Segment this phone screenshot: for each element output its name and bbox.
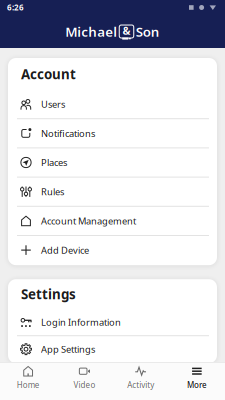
staticText: Account Management — [41, 215, 136, 227]
staticText: More — [187, 380, 207, 390]
staticText: Son — [136, 23, 160, 40]
button[interactable]: Account Management — [8, 207, 217, 236]
button[interactable]: Login Information — [8, 309, 217, 336]
staticText: Activity — [127, 380, 154, 390]
staticText: Add Device — [41, 244, 89, 256]
button[interactable]: Rules — [8, 178, 217, 207]
button[interactable]: More — [169, 365, 225, 390]
button[interactable]: Add Device — [8, 236, 217, 265]
staticText: Users — [41, 98, 65, 110]
button[interactable]: App Settings — [8, 336, 217, 363]
staticText: Video — [73, 380, 95, 390]
staticText: Account — [21, 65, 76, 83]
staticText: App Settings — [41, 343, 95, 355]
button[interactable]: Home — [0, 365, 56, 390]
staticText: Places — [41, 156, 67, 169]
button[interactable]: Activity — [112, 365, 169, 390]
button[interactable]: Video — [56, 365, 112, 390]
button[interactable]: Users — [8, 90, 217, 119]
button[interactable]: Notifications — [8, 119, 217, 148]
staticText: Rules — [41, 185, 64, 198]
button[interactable]: Places — [8, 148, 217, 178]
staticText: 6:26 — [7, 2, 24, 13]
staticText: Login Information — [41, 316, 121, 328]
staticText: Michael — [65, 23, 117, 40]
staticText: & — [122, 23, 130, 38]
staticText: Notifications — [41, 127, 95, 139]
staticText: Settings — [21, 285, 76, 303]
staticText: Home — [17, 380, 40, 390]
